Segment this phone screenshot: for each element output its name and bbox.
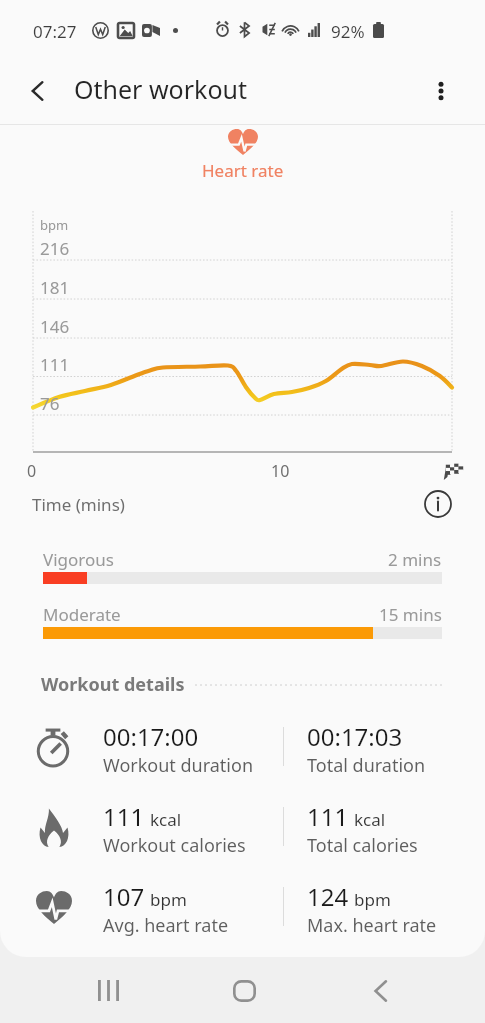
staticText: 107 (103, 880, 145, 913)
staticText: 0 (27, 460, 37, 482)
staticText: 111 (103, 800, 145, 833)
staticText: Time (mins) (32, 493, 125, 516)
staticText: Workout details (41, 672, 185, 697)
staticText: Workout duration (103, 753, 254, 778)
staticText: bpm (354, 888, 391, 911)
staticText: 124 (307, 880, 349, 913)
staticText: 92% (331, 20, 365, 43)
staticText: 00:17:03 (307, 720, 403, 753)
staticText: Avg. heart rate (103, 913, 229, 938)
staticText: 111 (307, 800, 349, 833)
staticText: 76 (40, 392, 60, 415)
staticText: Total calories (307, 833, 418, 858)
staticText: kcal (354, 808, 386, 831)
staticText: bpm (150, 888, 187, 911)
staticText: Other workout (74, 72, 247, 106)
staticText: 181 (40, 276, 70, 299)
staticText: 10 (271, 460, 290, 482)
staticText: 216 (40, 237, 70, 260)
staticText: 00:17:00 (103, 720, 199, 753)
staticText: kcal (150, 808, 182, 831)
button[interactable]: 111 (0, 795, 485, 873)
staticText: 146 (40, 315, 70, 338)
staticText: Heart rate (202, 159, 284, 182)
button[interactable]: Home (214, 958, 274, 1023)
staticText: Vigorous (43, 548, 114, 571)
staticText: 15 mins (379, 603, 442, 626)
button[interactable]: 107 (0, 875, 485, 953)
staticText: 07:27 (33, 20, 77, 43)
staticText: Max. heart rate (307, 913, 437, 938)
staticText: 111 (40, 353, 70, 376)
staticText: Total duration (307, 753, 426, 778)
button[interactable]: Back (350, 958, 410, 1023)
button[interactable]: More options (419, 69, 463, 113)
button[interactable]: 00:17:00 (0, 715, 485, 793)
staticText: Moderate (43, 603, 121, 626)
button[interactable]: Recent apps (78, 958, 138, 1023)
button[interactable]: Navigate up (16, 69, 60, 113)
staticText: bpm (40, 216, 69, 234)
staticText: 2 mins (388, 548, 442, 571)
button[interactable]: Info (423, 489, 453, 519)
staticText: Workout calories (103, 833, 246, 858)
